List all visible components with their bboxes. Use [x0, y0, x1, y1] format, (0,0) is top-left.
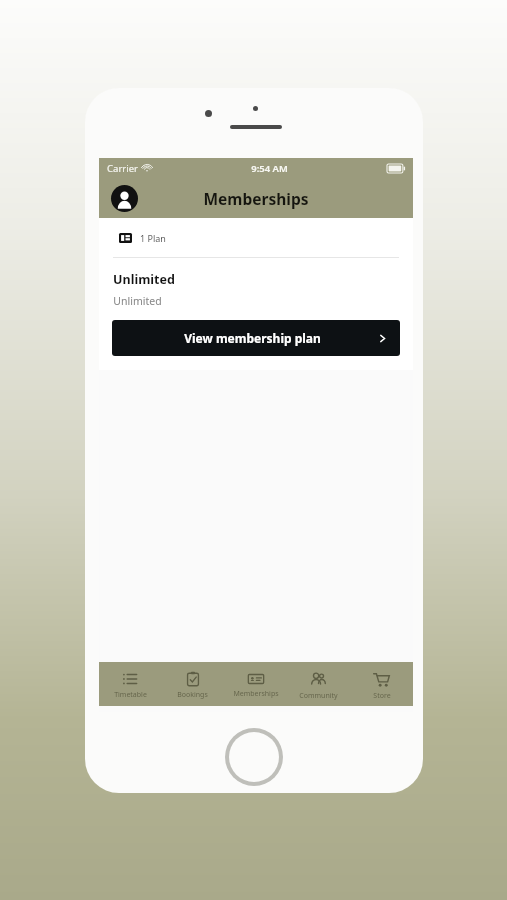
staticText: Unlimited — [113, 271, 175, 288]
staticText: Bookings — [177, 690, 208, 700]
staticText: Community — [299, 691, 338, 701]
button[interactable]: Community — [287, 662, 350, 706]
other: Home — [225, 728, 283, 786]
staticText: View membership plan — [184, 330, 321, 346]
staticText: Store — [373, 691, 391, 701]
staticText: Carrier — [107, 162, 138, 175]
button[interactable]: Timetable — [99, 662, 161, 706]
button[interactable]: View membership plan — [112, 320, 400, 356]
staticText: Timetable — [114, 690, 147, 700]
button[interactable]: Profile — [109, 183, 139, 213]
staticText: 1 Plan — [140, 232, 166, 244]
staticText: Unlimited — [113, 294, 162, 308]
button[interactable]: Store — [350, 662, 413, 706]
staticText: 9:54 AM — [251, 162, 288, 175]
staticText: Memberships — [203, 188, 309, 209]
button[interactable]: Bookings — [161, 662, 224, 706]
button[interactable]: Memberships — [224, 662, 287, 706]
staticText: Memberships — [233, 689, 279, 699]
